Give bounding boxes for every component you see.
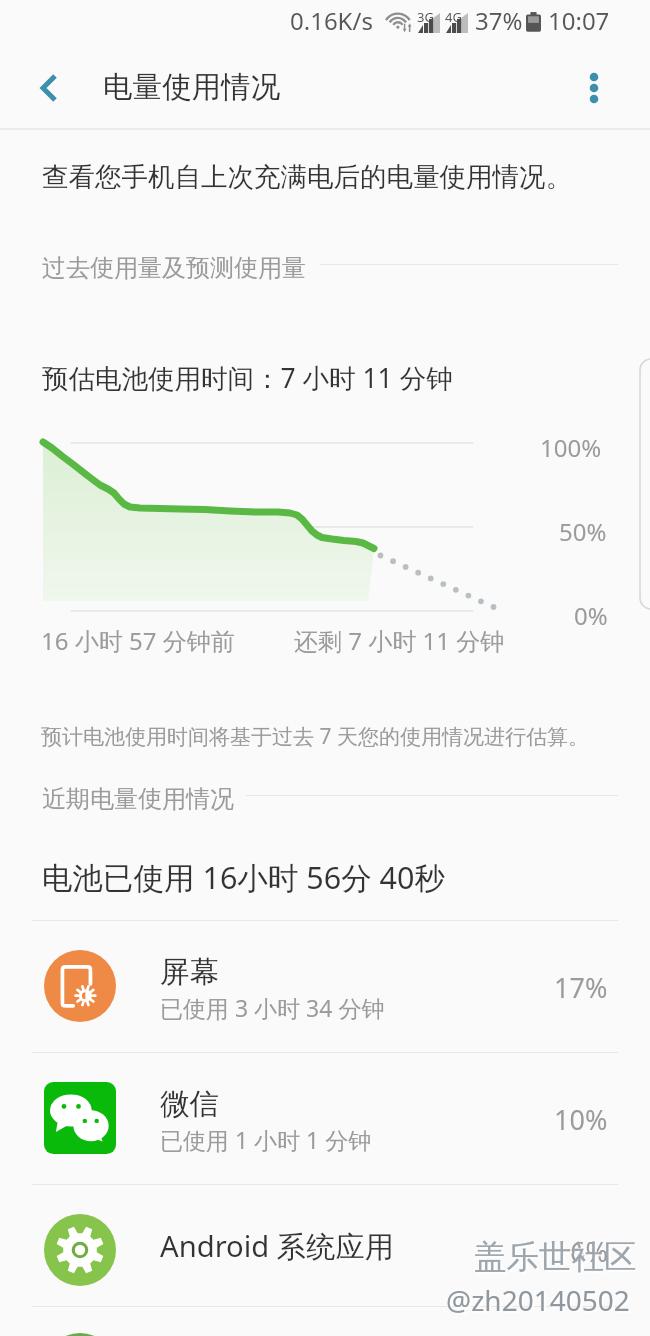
staticText: 50% — [559, 515, 607, 548]
staticText: 电池已使用 16小时 56分 40秒 — [42, 856, 445, 898]
staticText: 已使用 1 小时 1 分钟 — [160, 1124, 372, 1155]
button[interactable]: Back — [18, 48, 80, 127]
staticText: 0.16K/s — [290, 4, 373, 37]
staticText: 过去使用量及预测使用量 — [42, 253, 306, 283]
staticText: 盖乐世社区 — [474, 1237, 637, 1278]
staticText: 3G — [417, 8, 434, 26]
staticText: 电量使用情况 — [103, 69, 280, 106]
staticText: 查看您手机自上次充满电后的电量使用情况。 — [42, 160, 572, 193]
staticText: Android 系统应用 — [160, 1226, 394, 1266]
button[interactable]: 微信 — [0, 1052, 650, 1184]
staticText: 盖乐世社区 — [476, 1239, 639, 1280]
staticText: 17% — [554, 969, 608, 1006]
staticText: 还剩 7 小时 11 分钟 — [294, 624, 505, 657]
staticText: 已使用 3 小时 34 分钟 — [160, 992, 385, 1023]
staticText: 微信 — [160, 1086, 219, 1123]
button[interactable]: Android 系统应用 — [0, 1184, 650, 1316]
button[interactable]: 屏幕 — [0, 920, 650, 1052]
staticText: 100% — [540, 431, 602, 464]
staticText: 4G — [445, 8, 462, 26]
staticText: 37% — [475, 4, 523, 37]
staticText: @zh20140502 — [448, 1283, 632, 1321]
staticText: 预估电池使用时间：7 小时 11 分钟 — [42, 360, 453, 396]
staticText: @zh20140502 — [446, 1281, 630, 1319]
staticText: 16 小时 57 分钟前 — [41, 624, 235, 657]
button[interactable]: More options — [566, 48, 622, 127]
staticText: 预计电池使用时间将基于过去 7 天您的使用情况进行估算。 — [41, 722, 589, 751]
staticText: 屏幕 — [160, 954, 219, 991]
staticText: 近期电量使用情况 — [42, 784, 234, 814]
staticText: 10:07 — [548, 4, 610, 37]
staticText: 10% — [554, 1101, 608, 1138]
staticText: 6% — [570, 1233, 608, 1270]
staticText: 0% — [574, 599, 608, 632]
